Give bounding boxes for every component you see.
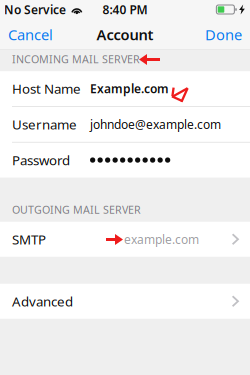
staticText: INCOMING MAIL SERVER [12,52,140,66]
staticText: OUTGOING MAIL SERVER [12,203,141,217]
staticText: Username [12,115,77,133]
staticText: Done [205,25,242,44]
staticText: No Service [4,1,66,17]
staticText: Account [96,25,153,44]
staticText: example.com [124,231,199,247]
staticText: Example.com [90,81,169,97]
staticText: Cancel [8,25,53,44]
staticText: Advanced [12,292,73,310]
staticText: johndoe@example.com [90,116,221,132]
staticText: SMTP [12,230,46,248]
button[interactable]: Done [197,19,250,49]
button[interactable]: Cancel [0,19,61,49]
button[interactable]: SMTP [0,222,250,257]
button[interactable]: Advanced [0,284,250,319]
staticText: 8:40 PM [102,1,147,17]
staticText: Password [12,151,70,169]
staticText: Host Name [12,80,81,97]
